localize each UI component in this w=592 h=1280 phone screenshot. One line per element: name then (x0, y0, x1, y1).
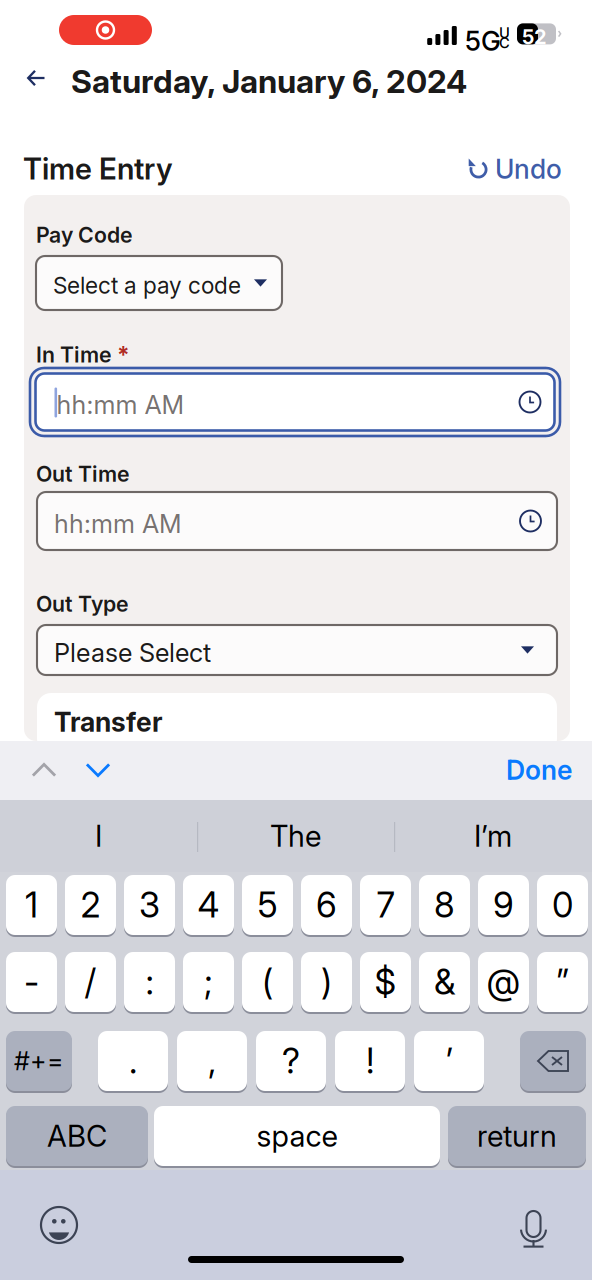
staticText: 7 (376, 884, 394, 926)
staticText: Out Type (36, 591, 129, 617)
staticText: * (117, 341, 130, 368)
button[interactable]: Dictation (519, 1205, 548, 1243)
button[interactable]: Emoji (41, 1207, 77, 1243)
staticText: 1 (25, 884, 38, 926)
button[interactable]: ? (256, 1030, 326, 1092)
button[interactable]: I’m (394, 800, 592, 872)
button[interactable]: . (98, 1030, 168, 1092)
staticText: Transfer (54, 706, 163, 738)
button[interactable]: hh:mm AM (35, 373, 554, 430)
staticText: 5G (465, 25, 501, 57)
button[interactable]: space (154, 1105, 440, 1167)
staticText: 6 (316, 884, 337, 926)
button[interactable]: Undo (467, 149, 562, 189)
staticText: ’ (445, 1040, 452, 1082)
button[interactable]: $ (360, 951, 411, 1013)
button[interactable]: ABC (6, 1105, 148, 1167)
button[interactable]: - (6, 951, 57, 1013)
button[interactable]: 5 (242, 874, 293, 936)
button[interactable]: Please Select (37, 625, 557, 675)
button[interactable]: Delete (520, 1030, 586, 1092)
staticText: $ (374, 961, 396, 1003)
staticText: ; (204, 961, 213, 1003)
button[interactable]: 0 (537, 874, 588, 936)
button[interactable]: & (419, 951, 470, 1013)
staticText: Saturday, January 6, 2024 (71, 62, 467, 101)
button[interactable]: #+= (6, 1030, 72, 1092)
staticText: The (270, 818, 321, 854)
button[interactable]: Select a pay code (36, 256, 282, 310)
button[interactable]: 1 (6, 874, 57, 936)
button[interactable]: 8 (419, 874, 470, 936)
button[interactable]: , (177, 1030, 247, 1092)
button[interactable]: 6 (301, 874, 352, 936)
button[interactable]: 4 (183, 874, 234, 936)
staticText: space (256, 1118, 337, 1154)
button[interactable]: Back (13, 55, 59, 101)
staticText: - (24, 961, 39, 1003)
staticText: ? (282, 1040, 300, 1082)
staticText: Please Select (54, 637, 211, 668)
button[interactable]: Next field (75, 747, 121, 793)
button[interactable]: 7 (360, 874, 411, 936)
button[interactable]: Transfer (37, 693, 557, 753)
staticText: . (129, 1040, 137, 1082)
staticText: Pay Code (36, 222, 133, 248)
staticText: hh:mm AM (56, 389, 184, 420)
staticText: Undo (495, 153, 562, 185)
button[interactable]: hh:mm AM (37, 492, 557, 550)
staticText: I (95, 818, 102, 854)
button[interactable]: Done (501, 747, 577, 793)
staticText: 0 (552, 884, 573, 926)
button[interactable]: 3 (124, 874, 175, 936)
button[interactable]: ” (537, 951, 588, 1013)
button[interactable]: ; (183, 951, 234, 1013)
button[interactable]: 9 (478, 874, 529, 936)
staticText: U (499, 24, 510, 42)
button[interactable]: ! (335, 1030, 405, 1092)
staticText: 5 (257, 884, 277, 926)
staticText: / (84, 961, 96, 1003)
staticText: In Time (36, 342, 112, 368)
staticText: : (145, 961, 153, 1003)
staticText: 9 (493, 884, 514, 926)
button[interactable]: ’ (414, 1030, 484, 1092)
button[interactable]: ) (301, 951, 352, 1013)
button[interactable]: : (124, 951, 175, 1013)
button[interactable]: / (65, 951, 116, 1013)
staticText: 2 (80, 884, 100, 926)
staticText: I’m (474, 818, 512, 854)
staticText: 4 (197, 884, 219, 926)
staticText: ) (321, 961, 332, 1003)
staticText: ABC (47, 1118, 107, 1154)
staticText: , (208, 1040, 216, 1082)
button[interactable]: Previous field (21, 747, 67, 793)
staticText: hh:mm AM (54, 508, 182, 539)
staticText: 8 (434, 884, 455, 926)
staticText: ( (262, 961, 273, 1003)
staticText: Done (506, 754, 572, 786)
staticText: ! (366, 1040, 374, 1082)
staticText: #+= (14, 1046, 64, 1076)
staticText: ” (556, 961, 569, 1003)
staticText: 52 (522, 25, 547, 49)
button[interactable]: 2 (65, 874, 116, 936)
button[interactable]: return (448, 1105, 586, 1167)
button[interactable]: ( (242, 951, 293, 1013)
button[interactable]: @ (478, 951, 529, 1013)
button[interactable]: I (0, 800, 197, 872)
staticText: C (499, 34, 510, 52)
button[interactable]: The (197, 800, 394, 872)
staticText: @ (486, 961, 520, 1003)
staticText: Select a pay code (53, 272, 241, 299)
staticText: & (434, 961, 455, 1003)
staticText: 3 (139, 884, 160, 926)
staticText: return (477, 1118, 557, 1154)
staticText: Out Time (36, 461, 130, 487)
staticText: Time Entry (23, 151, 173, 186)
